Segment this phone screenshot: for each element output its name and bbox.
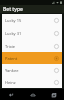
button[interactable]: Bet type [0,5,64,13]
staticText: Yankee [5,68,54,73]
staticText: Patent [5,56,54,61]
button[interactable]: Heinz [2,76,62,88]
staticText: Bet type [3,6,23,13]
button[interactable]: Home [22,89,43,100]
staticText: Lucky 31 [5,31,54,36]
button[interactable]: Recent apps [43,89,64,100]
button[interactable]: Back [0,89,22,100]
staticText: Trixie [5,44,54,49]
button[interactable]: Yankee [2,64,62,76]
button[interactable]: Lucky 31 [2,27,62,40]
button[interactable]: Patent [2,52,62,64]
button[interactable]: Lucky 15 [2,14,62,27]
staticText: Heinz [5,80,54,85]
button[interactable]: Trixie [2,40,62,52]
staticText: Lucky 15 [5,18,54,23]
